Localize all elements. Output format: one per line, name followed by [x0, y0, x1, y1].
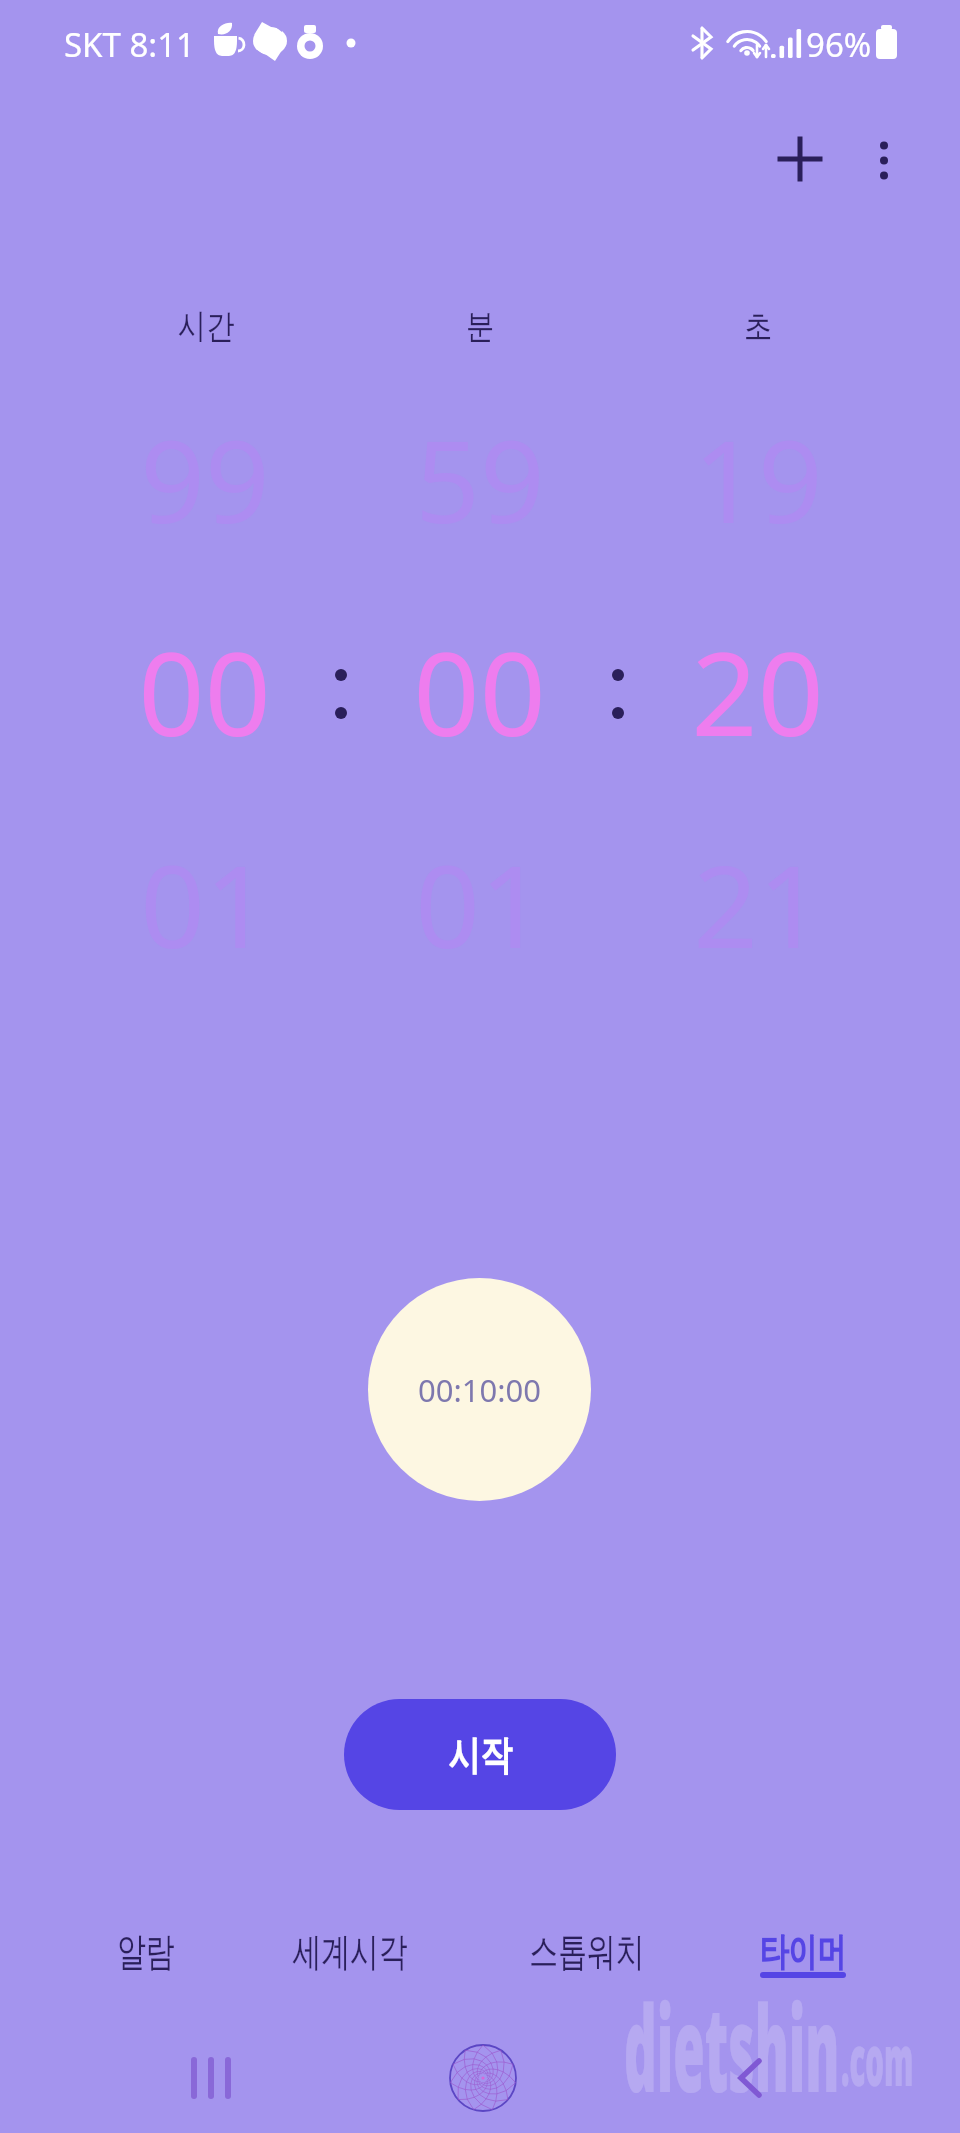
staticText: 시작 [448, 1730, 512, 1780]
button[interactable] [235, 1902, 465, 1998]
button[interactable]: More options [838, 113, 930, 205]
staticText: 시간 [178, 305, 234, 348]
staticText: 스톱워치 [529, 1927, 645, 1976]
button[interactable] [688, 1902, 918, 1998]
staticText: 19 [693, 402, 823, 556]
button[interactable]: Home [437, 2032, 529, 2124]
staticText: 알람 [117, 1927, 175, 1976]
staticText: 96% [806, 22, 872, 67]
staticText: 20 [691, 612, 824, 770]
button[interactable]: 시작 [344, 1699, 616, 1810]
staticText: 초 [744, 305, 772, 348]
staticText: 타이머 [759, 1927, 846, 1976]
staticText: 99 [140, 402, 270, 556]
button[interactable]: 00:10:00 [368, 1278, 591, 1501]
button[interactable]: Recents [166, 2032, 258, 2124]
staticText: .com [841, 2011, 914, 2106]
staticText: 59 [415, 402, 545, 556]
staticText: 01 [415, 827, 545, 981]
staticText: SKT 8:11 [64, 22, 195, 67]
button[interactable]: Back [704, 2032, 796, 2124]
staticText: 00:10:00 [418, 1369, 542, 1411]
button[interactable] [30, 1902, 260, 1998]
staticText: 세계시각 [292, 1927, 408, 1976]
staticText: 분 [466, 305, 494, 348]
button[interactable]: Add timer [754, 113, 846, 205]
staticText: dietshin [624, 1966, 840, 2127]
staticText: 01 [140, 827, 270, 981]
staticText: 00 [413, 612, 546, 770]
button[interactable] [472, 1902, 702, 1998]
staticText: 00 [138, 612, 271, 770]
